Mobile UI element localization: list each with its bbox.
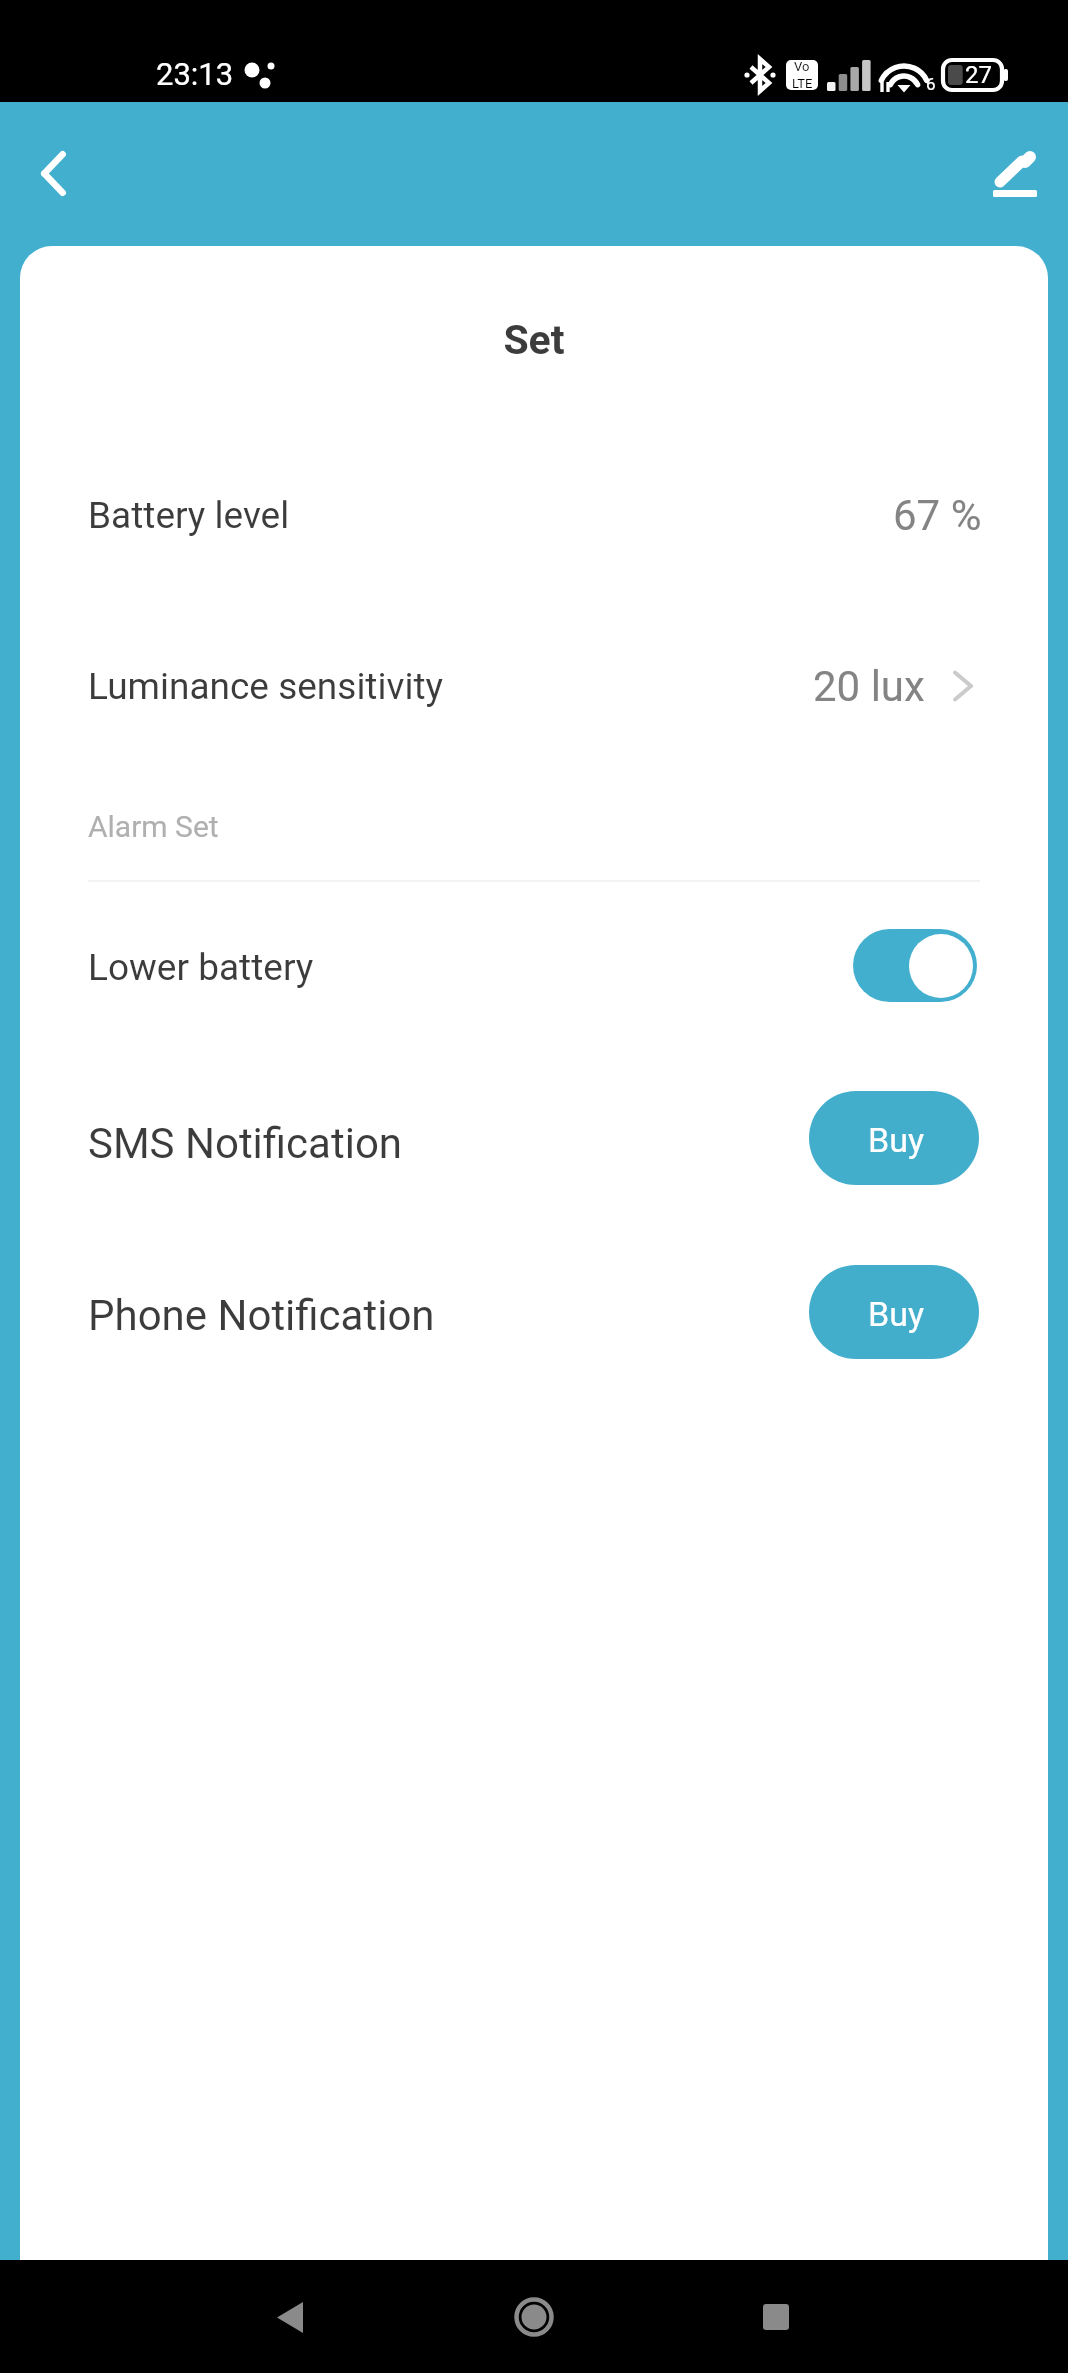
staticText: Luminance sensitivity: [88, 665, 444, 708]
staticText: Phone Notification: [88, 1291, 435, 1340]
button[interactable]: Buy: [809, 1265, 979, 1359]
button[interactable]: Home: [489, 2272, 579, 2362]
button[interactable]: Edit: [975, 133, 1055, 213]
staticText: Set: [20, 316, 1048, 364]
staticText: LTE: [792, 76, 813, 90]
staticText: 23:13: [156, 56, 234, 92]
button[interactable]: Battery level: [20, 485, 1048, 545]
staticText: 67 %: [893, 491, 982, 540]
staticText: Lower battery: [88, 946, 314, 989]
staticText: 27: [965, 61, 992, 89]
button[interactable]: Recent apps: [731, 2272, 821, 2362]
staticText: 6: [926, 74, 936, 94]
staticText: Vo: [794, 60, 810, 74]
button[interactable]: Back: [13, 133, 93, 213]
staticText: Buy: [868, 1294, 925, 1334]
button[interactable]: Back: [245, 2272, 335, 2362]
staticText: SMS Notification: [88, 1119, 403, 1168]
staticText: 20 lux: [813, 662, 925, 711]
staticText: Alarm Set: [88, 809, 219, 844]
button[interactable]: Luminance sensitivity: [20, 656, 1048, 716]
staticText: Buy: [868, 1120, 925, 1160]
button[interactable]: Lower battery toggle: [853, 929, 977, 1002]
button[interactable]: Buy: [809, 1091, 979, 1185]
staticText: Battery level: [88, 494, 290, 537]
